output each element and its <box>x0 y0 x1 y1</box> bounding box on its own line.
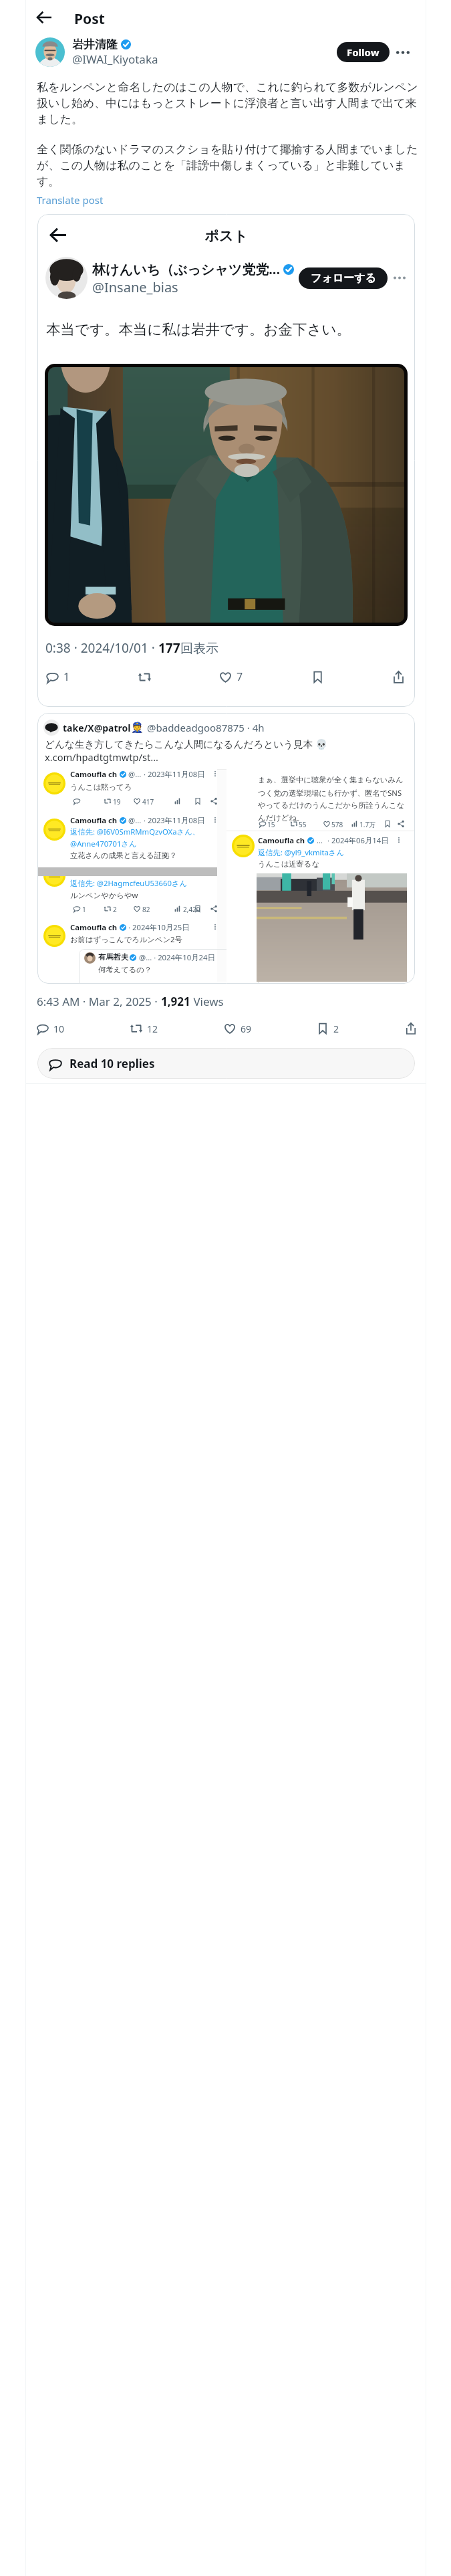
staticText: 69 <box>241 1023 252 1035</box>
button[interactable]: Reply <box>36 1022 65 1035</box>
staticText: 19 <box>113 797 121 807</box>
staticText: @IWAI_Kiyotaka <box>72 51 158 67</box>
staticText: 55 <box>299 820 307 829</box>
staticText: · 2023年11月08日 <box>144 815 205 825</box>
button[interactable]: Like <box>223 1022 252 1035</box>
staticText: 1 <box>63 669 70 684</box>
staticText: 12 <box>147 1023 158 1035</box>
staticText: @... <box>128 769 142 779</box>
button[interactable]: take/X@patrol <box>37 713 415 984</box>
button[interactable]: フォローする <box>299 267 388 289</box>
staticText: 全く関係のないドラマのスクショを貼り付けて揶揄する人間までいましたが、この人物は… <box>37 142 420 189</box>
button[interactable]: Read 10 replies <box>37 1048 415 1079</box>
button[interactable]: Follow <box>337 42 390 62</box>
staticText: 2 <box>113 905 117 914</box>
staticText: どんな生き方してきたらこんな人間になるんだろという見本 💀 <box>45 737 328 750</box>
staticText: 2 <box>333 1023 339 1035</box>
staticText: @baddeadgoo87875 · 4h <box>147 721 265 734</box>
button[interactable]: Back <box>31 4 57 31</box>
staticText: @Insane_bias <box>92 278 178 296</box>
staticText: Camoufla ch <box>70 815 118 825</box>
staticText: Follow <box>347 45 380 59</box>
staticText: · 2024年06月14日 <box>327 835 389 845</box>
staticText: 返信先: @yl9_vkmitaさん <box>258 847 344 857</box>
staticText: 7 <box>237 669 243 684</box>
button[interactable]: Translate post <box>37 193 104 207</box>
staticText: Post <box>74 9 105 29</box>
staticText: 本当です。本当に私は岩井です。お金下さい。 <box>46 320 351 338</box>
staticText: Camoufla ch <box>70 922 118 932</box>
staticText: 1.7万 <box>359 820 376 829</box>
staticText: うんこは近寄るな <box>258 859 319 869</box>
staticText: @... · 2024年10月24日 <box>139 952 215 962</box>
staticText: 返信先: @I6V0SmRMmQzvOXaさん、 <box>70 827 200 837</box>
button[interactable]: More options <box>395 44 411 60</box>
staticText: Camoufla ch <box>258 835 305 845</box>
staticText: Read 10 replies <box>69 1056 155 1071</box>
staticText: うんこは黙ってろ <box>70 782 132 792</box>
staticText: 6:43 AM · Mar 2, 2025 · <box>37 994 161 1009</box>
button[interactable]: Bookmark <box>316 1022 339 1035</box>
button[interactable]: Share <box>392 670 406 684</box>
staticText: · 2023年11月08日 <box>144 769 205 779</box>
button[interactable]: Repost <box>138 670 152 684</box>
staticText: · 2024年10月25日 <box>128 922 190 932</box>
staticText: 私をルンペンと命名したのはこの人物で、これに釣られて多数がルンペン扱いし始め、中… <box>37 80 420 126</box>
staticText: Camoufla ch <box>70 769 118 779</box>
staticText: 回表示 <box>180 641 218 657</box>
staticText: 82 <box>142 905 150 914</box>
staticText: 417 <box>142 797 154 807</box>
staticText: 立花さんの成果と言える証拠？ <box>70 851 177 860</box>
staticText: 15 <box>267 820 275 829</box>
staticText: お前はずっこんでろルンペン2号 <box>70 934 182 944</box>
button[interactable]: Like <box>218 669 243 684</box>
staticText: 2,420 <box>183 905 200 914</box>
button[interactable]: ポスト <box>37 214 415 707</box>
button[interactable]: Share <box>404 1022 418 1035</box>
staticText: 578 <box>331 820 343 829</box>
staticText: ルンペンやからやw <box>70 890 138 900</box>
staticText: 👮 <box>131 722 144 734</box>
staticText: take/X@patrol <box>63 722 131 734</box>
button[interactable]: Repost <box>130 1022 158 1035</box>
staticText: 有馬哲夫 <box>98 952 129 962</box>
button[interactable]: Bookmark <box>311 670 325 684</box>
staticText: ポスト <box>37 227 415 245</box>
staticText: 10 <box>53 1023 65 1035</box>
staticText: ... <box>317 835 323 845</box>
staticText: @... <box>128 815 142 825</box>
staticText: 何考えてるの？ <box>98 965 152 974</box>
staticText: 岩井清隆 <box>72 37 118 51</box>
staticText: まぁ、選挙中に聴衆が全く集まらないみんつく党の選挙現場にも行かず、匿名でSNSや… <box>258 775 406 823</box>
staticText: 林けんいち（ぶっシャツ党党... <box>92 260 281 278</box>
staticText: 0:38 · 2024/10/01 · <box>45 639 158 657</box>
staticText: @Anne470701さん <box>70 839 137 849</box>
staticText: フォローする <box>311 272 376 285</box>
staticText: 返信先: @2HagmcfeuU53660さん <box>70 878 188 888</box>
staticText: 177 <box>158 639 180 657</box>
staticText: 1,921 <box>161 994 190 1009</box>
staticText: x.com/hpadtgtmwtp/st... <box>45 750 158 764</box>
staticText: Translate post <box>37 193 104 207</box>
button[interactable]: Reply <box>45 669 70 684</box>
staticText: 1 <box>82 905 86 914</box>
staticText: Views <box>190 994 224 1009</box>
